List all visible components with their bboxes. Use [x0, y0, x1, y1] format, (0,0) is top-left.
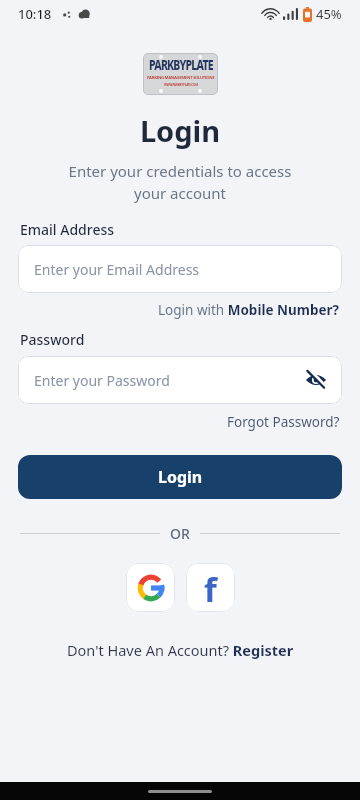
button[interactable]: [126, 563, 175, 612]
staticText: 10:18: [18, 5, 52, 23]
staticText: Enter your Password: [34, 371, 170, 390]
staticText: Login: [0, 111, 360, 150]
staticText: 45%: [316, 5, 342, 23]
button[interactable]: Enter your Email Address: [18, 245, 342, 293]
button[interactable]: Don't Have An Account? Register: [67, 640, 294, 660]
staticText: f: [204, 567, 217, 612]
staticText: Login: [158, 466, 203, 488]
button[interactable]: Login: [18, 455, 342, 499]
button[interactable]: f: [186, 563, 235, 612]
button[interactable]: Forgot Password?: [227, 413, 340, 431]
staticText: Email Address: [20, 220, 115, 239]
button[interactable]: Enter your Password: [18, 356, 342, 404]
staticText: OR: [170, 524, 190, 543]
staticText: Password: [20, 330, 85, 349]
staticText: PARKING MANAGEMENT SOLUTIONS: [147, 75, 215, 81]
staticText: PARKBYPLATE: [149, 55, 213, 74]
staticText: Enter your credentials to access your ac…: [0, 161, 360, 204]
staticText: Enter your Email Address: [34, 260, 200, 279]
staticText: WWW.PARKBYPLATE.COM: [164, 83, 198, 87]
button[interactable]: Login with Mobile Number?: [158, 301, 340, 319]
